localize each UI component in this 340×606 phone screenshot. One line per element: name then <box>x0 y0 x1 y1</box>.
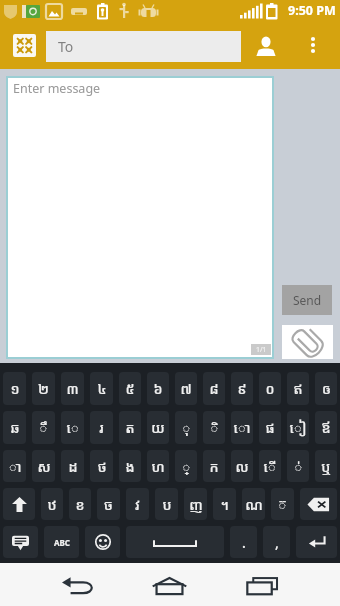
button[interactable]: To <box>46 31 241 62</box>
button[interactable]: ថ <box>90 450 113 482</box>
staticText: ្ <box>182 457 191 476</box>
staticText: . <box>242 533 246 552</box>
button[interactable]: Keyboard settings <box>3 526 38 558</box>
button[interactable]: ា <box>3 450 26 482</box>
button[interactable]: Emoji <box>85 526 120 558</box>
button[interactable]: ណ <box>242 488 265 520</box>
button[interactable]: ើ <box>259 450 281 482</box>
button[interactable]: ឬ <box>315 450 337 482</box>
staticText: ខ <box>75 495 85 514</box>
staticText: ៀ <box>289 418 307 437</box>
button[interactable]: App icon <box>13 34 36 57</box>
button[interactable]: ៦ <box>147 372 169 405</box>
staticText: ៣ <box>66 379 79 398</box>
button[interactable]: ់ <box>287 450 309 482</box>
button[interactable]: ្ <box>175 450 197 482</box>
button[interactable]: Recents <box>240 568 284 604</box>
button[interactable]: Back <box>56 568 100 604</box>
button[interactable]: ០ <box>259 372 281 405</box>
staticText: យ <box>151 418 165 437</box>
button[interactable]: ឹ <box>32 411 55 444</box>
button[interactable]: ផ <box>259 411 281 444</box>
button[interactable]: Home <box>147 568 191 604</box>
button[interactable]: ញ <box>184 488 207 520</box>
staticText: ា <box>8 457 22 476</box>
staticText: ោ <box>233 418 251 437</box>
staticText: ស <box>37 457 51 476</box>
staticText: ឬ <box>321 457 331 476</box>
button[interactable]: ៤ <box>90 372 113 405</box>
staticText: ឹ <box>39 418 48 437</box>
staticText: Send <box>293 292 322 308</box>
button[interactable]: ក <box>203 450 225 482</box>
staticText: ង <box>125 457 135 476</box>
button[interactable]: Contacts <box>248 28 284 64</box>
staticText: 9:50 PM <box>288 2 336 19</box>
staticText: ៊ <box>278 495 287 514</box>
staticText: វ <box>135 495 140 514</box>
button[interactable]: Backspace <box>300 488 337 520</box>
button[interactable]: ៨ <box>203 372 225 405</box>
button[interactable]: ឲ <box>315 372 337 405</box>
staticText: ញ <box>189 495 203 514</box>
button[interactable]: ៧ <box>175 372 197 405</box>
button[interactable]: ៀ <box>287 411 309 444</box>
button[interactable]: យ <box>147 411 169 444</box>
button[interactable]: Enter message <box>6 76 274 359</box>
staticText: ៩ <box>237 379 247 398</box>
button[interactable]: ១ <box>3 372 26 405</box>
button[interactable]: ហ <box>147 450 169 482</box>
staticText: ុ <box>182 418 191 437</box>
button[interactable]: ច <box>97 488 120 520</box>
staticText: ៥ <box>125 379 135 398</box>
button[interactable]: ABC <box>44 526 79 558</box>
staticText: ៧ <box>180 379 192 398</box>
button[interactable]: ិ <box>203 411 225 444</box>
button[interactable]: ោ <box>231 411 253 444</box>
button[interactable]: ៊ <box>271 488 294 520</box>
button[interactable]: ស <box>32 450 55 482</box>
staticText: ដ <box>68 457 78 476</box>
button[interactable]: ឪ <box>315 411 337 444</box>
staticText: ត <box>125 418 135 437</box>
staticText: ់ <box>294 457 303 476</box>
button[interactable]: ៣ <box>61 372 84 405</box>
button[interactable]: ឥ <box>287 372 309 405</box>
staticText: ផ <box>265 418 275 437</box>
staticText: ិ <box>210 418 219 437</box>
button[interactable]: More options <box>296 28 330 62</box>
staticText: ច <box>104 495 113 514</box>
button[interactable]: ប <box>155 488 178 520</box>
button[interactable]: ត <box>119 411 141 444</box>
button[interactable]: Space <box>126 526 224 558</box>
button[interactable]: Enter <box>296 526 337 558</box>
staticText: រ <box>99 418 104 437</box>
button[interactable]: ង <box>119 450 141 482</box>
button[interactable]: ៥ <box>119 372 141 405</box>
button[interactable]: រ <box>90 411 113 444</box>
button[interactable]: ឆ <box>3 411 26 444</box>
button[interactable]: . <box>230 526 257 558</box>
button[interactable]: Send <box>282 285 332 315</box>
staticText: ណ <box>245 495 263 514</box>
button[interactable]: ុ <box>175 411 197 444</box>
button[interactable]: ។ <box>213 488 236 520</box>
button[interactable]: ឋ <box>41 488 63 520</box>
button[interactable]: ខ <box>69 488 91 520</box>
button[interactable]: Shift <box>3 488 35 520</box>
staticText: ។ <box>220 495 229 514</box>
button[interactable]: េ <box>61 411 84 444</box>
button[interactable]: ល <box>231 450 253 482</box>
button[interactable]: Attach <box>282 325 333 359</box>
button[interactable]: វ <box>126 488 149 520</box>
staticText: , <box>275 533 279 552</box>
button[interactable]: , <box>263 526 290 558</box>
staticText: ឋ <box>47 495 57 514</box>
staticText: ABC <box>54 537 70 548</box>
button[interactable]: ដ <box>61 450 84 482</box>
button[interactable]: ៩ <box>231 372 253 405</box>
staticText: ប <box>162 495 172 514</box>
staticText: ៨ <box>209 379 219 398</box>
button[interactable]: ២ <box>32 372 55 405</box>
staticText: ១ <box>10 379 20 398</box>
